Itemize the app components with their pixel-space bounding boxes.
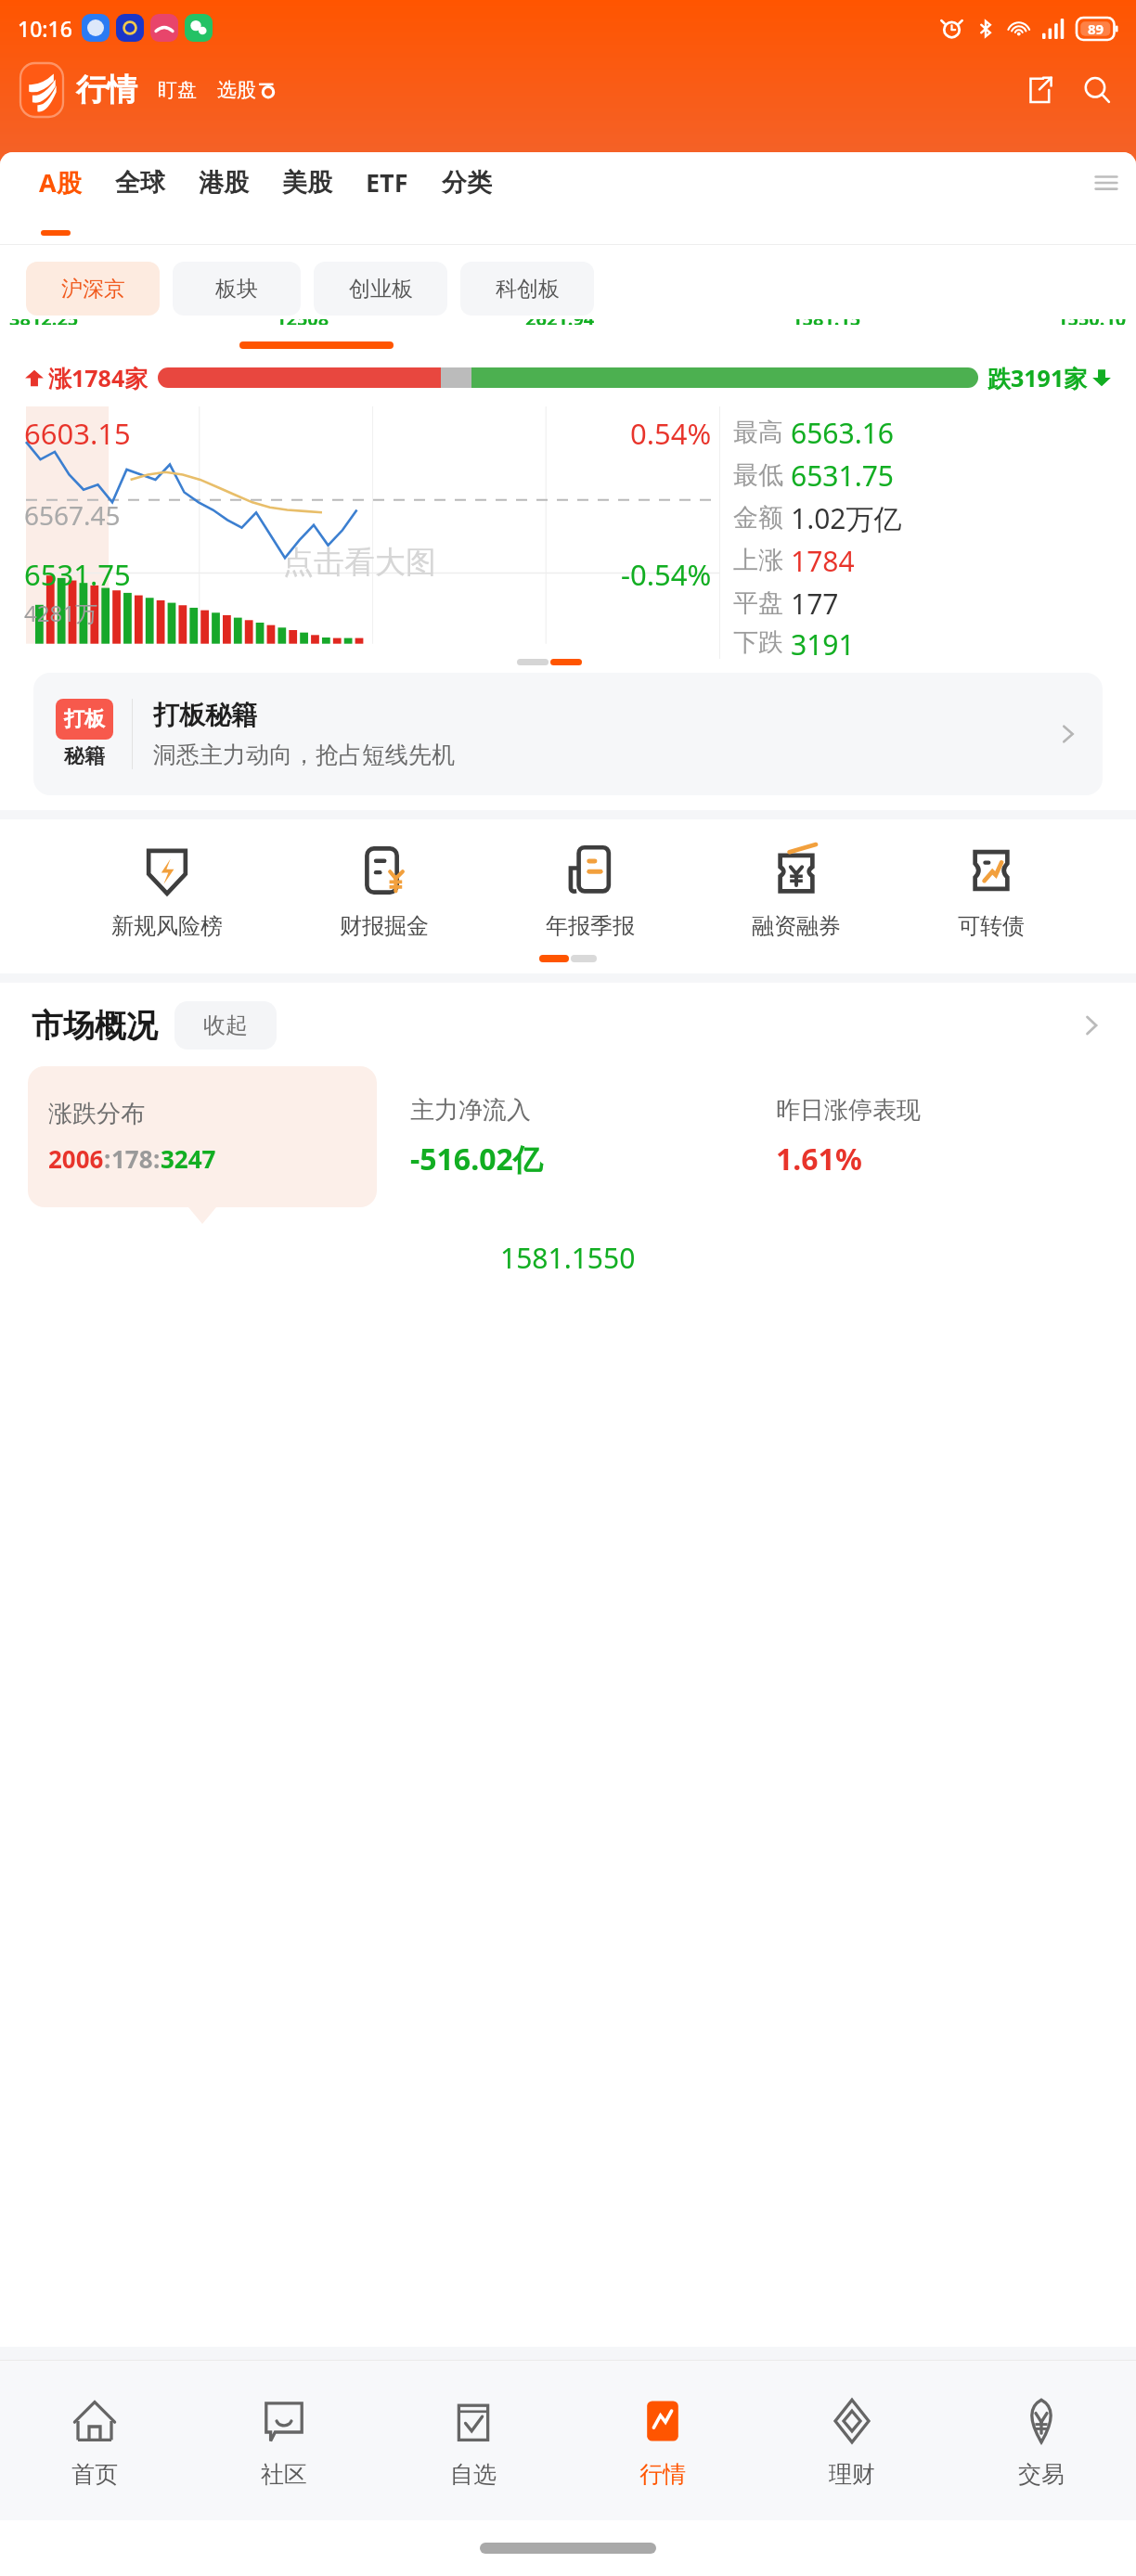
button[interactable]: Search <box>1078 71 1116 109</box>
button[interactable]: 盯盘 <box>158 78 197 102</box>
button[interactable]: 年报季报 <box>540 836 640 946</box>
staticText: -516.02亿 <box>410 1139 543 1179</box>
staticText: 1.61% <box>776 1139 862 1179</box>
staticText: 平盘 <box>733 587 783 619</box>
staticText: 6603.15 <box>24 414 131 453</box>
staticText: 打板秘籍 <box>153 699 257 731</box>
button[interactable]: 自选 <box>379 2361 568 2520</box>
staticText: 洞悉主力动向，抢占短线先机 <box>153 741 455 769</box>
staticText: 自选 <box>450 2460 497 2489</box>
staticText: 跌3191家 <box>988 362 1088 393</box>
staticText: A股 <box>39 165 82 200</box>
button[interactable]: 社区 <box>189 2361 379 2520</box>
staticText: 科创板 <box>496 276 560 303</box>
button[interactable]: More tabs <box>1086 162 1127 203</box>
staticText: 3191 <box>791 625 855 659</box>
button[interactable]: 6603.15 <box>0 406 719 659</box>
button[interactable]: 新规风险榜 <box>106 836 228 946</box>
button[interactable]: 全球 <box>100 154 180 212</box>
staticText: 金额 <box>733 502 783 534</box>
staticText: 秘籍 <box>64 743 105 769</box>
staticText: 10:16 <box>18 14 72 43</box>
staticText: 6563.16 <box>791 414 894 452</box>
staticText: : <box>104 1142 111 1175</box>
staticText: 美股 <box>282 167 332 199</box>
staticText: 3247 <box>161 1142 216 1175</box>
staticText: 选股 <box>217 78 256 102</box>
staticText: 2621.94 <box>525 319 595 325</box>
staticText: 行情 <box>639 2460 686 2489</box>
button[interactable]: 首页 <box>0 2361 189 2520</box>
staticText: 理财 <box>829 2460 875 2489</box>
staticText: 创业板 <box>349 276 413 303</box>
staticText: 全球 <box>115 167 165 199</box>
staticText: -0.54% <box>621 555 712 594</box>
button[interactable]: 港股 <box>184 154 264 212</box>
button[interactable]: 选股 <box>217 78 278 102</box>
staticText: 盯盘 <box>158 78 197 102</box>
staticText: 89 <box>1088 19 1104 38</box>
staticText: 行情 <box>76 71 137 109</box>
button[interactable]: 创业板 <box>314 262 447 316</box>
button[interactable]: 行情 <box>568 2361 757 2520</box>
staticText: 昨日涨停表现 <box>776 1095 921 1126</box>
staticText: 177 <box>791 585 839 623</box>
button[interactable]: ETF <box>351 152 423 213</box>
staticText: 涨跌分布 <box>48 1099 145 1129</box>
staticText: 6531.75 <box>24 555 131 594</box>
staticText: 下跌 <box>733 626 783 658</box>
staticText: 年报季报 <box>546 912 635 940</box>
staticText: 可转债 <box>958 912 1025 940</box>
button[interactable]: 市场概况 <box>32 996 1104 1055</box>
staticText: 最低 <box>733 459 783 491</box>
staticText: 新规风险榜 <box>111 912 223 940</box>
staticText: ETF <box>366 165 408 200</box>
staticText: 沪深京 <box>61 276 125 303</box>
button[interactable]: 主力净流入 <box>394 1066 742 1207</box>
staticText: 2006 <box>48 1142 104 1175</box>
staticText: 最高 <box>733 417 783 448</box>
staticText: 市场概况 <box>32 1006 158 1046</box>
staticText: 3812.25 <box>9 319 79 325</box>
button[interactable]: 美股 <box>267 154 347 212</box>
button[interactable]: 科创板 <box>460 262 594 316</box>
staticText: 交易 <box>1018 2460 1065 2489</box>
staticText: 1581.15 <box>792 319 861 325</box>
staticText: 财报掘金 <box>340 912 429 940</box>
staticText: 打板 <box>64 706 105 732</box>
button[interactable]: 沪深京 <box>26 262 160 316</box>
staticText: 上涨 <box>733 545 783 576</box>
staticText: : <box>153 1142 161 1175</box>
staticText: 4281万 <box>24 598 97 628</box>
button[interactable]: Share <box>1021 71 1058 109</box>
staticText: 1784 <box>791 542 855 580</box>
staticText: 主力净流入 <box>410 1095 531 1126</box>
staticText: 港股 <box>199 167 249 199</box>
staticText: 6567.45 <box>24 497 121 533</box>
button[interactable]: 打板 <box>33 673 1103 795</box>
button[interactable]: 交易 <box>947 2361 1136 2520</box>
staticText: 6531.75 <box>791 457 894 495</box>
button[interactable]: 收起 <box>174 1001 277 1050</box>
staticText: 178 <box>111 1142 153 1175</box>
staticText: 0.54% <box>630 414 712 453</box>
staticText: 12508 <box>276 319 329 325</box>
staticText: 社区 <box>261 2460 307 2489</box>
button[interactable]: 涨跌分布 <box>28 1066 377 1207</box>
staticText: 首页 <box>71 2460 118 2489</box>
button[interactable]: 融资融券 <box>746 836 846 946</box>
staticText: 涨1784家 <box>48 362 148 393</box>
staticText: 融资融券 <box>752 912 841 940</box>
staticText: 收起 <box>203 1011 248 1039</box>
staticText: 1581.1550 <box>500 1239 636 1276</box>
button[interactable]: 分类 <box>427 154 507 212</box>
button[interactable]: 可转债 <box>952 836 1030 946</box>
button[interactable]: 昨日涨停表现 <box>759 1066 1108 1207</box>
staticText: 板块 <box>215 276 258 303</box>
staticText: 分类 <box>442 167 492 199</box>
button[interactable]: 理财 <box>757 2361 947 2520</box>
staticText: 1550.10 <box>1057 319 1127 325</box>
button[interactable]: A股 <box>24 152 97 213</box>
button[interactable]: 财报掘金 <box>334 836 434 946</box>
button[interactable]: 板块 <box>173 262 301 316</box>
